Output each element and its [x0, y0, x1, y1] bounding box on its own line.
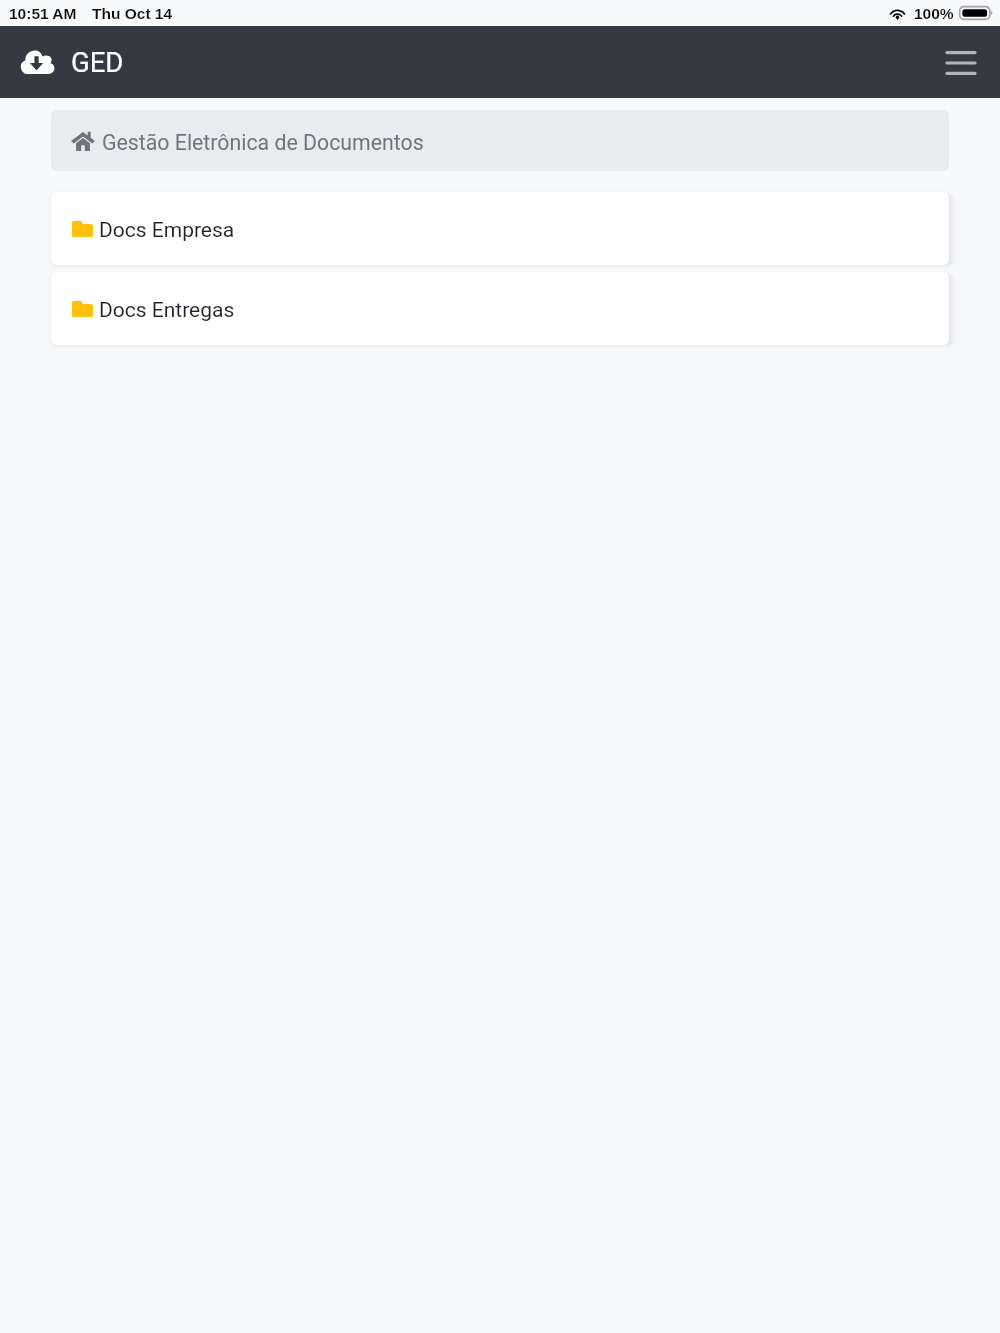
staticText: Docs Entregas: [99, 298, 235, 323]
staticText: Gestão Eletrônica de Documentos: [102, 130, 424, 155]
staticText: Docs Empresa: [99, 218, 235, 243]
staticText: GED: [71, 46, 124, 78]
button[interactable]: Docs Empresa: [51, 192, 949, 265]
button[interactable]: Docs Entregas: [51, 272, 949, 345]
staticText: 10:51 AM: [9, 5, 77, 22]
staticText: Thu Oct 14: [92, 5, 173, 22]
button[interactable]: Open navigation menu: [935, 39, 981, 85]
staticText: 100%: [914, 5, 954, 22]
button[interactable]: GED: [20, 46, 124, 78]
button[interactable]: Gestão Eletrônica de Documentos: [51, 110, 949, 171]
